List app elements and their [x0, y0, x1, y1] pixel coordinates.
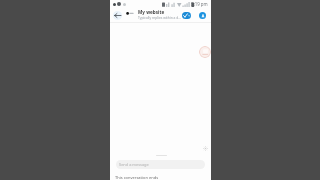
- button[interactable]: Verified business: [182, 12, 191, 19]
- button[interactable]: Business profile photo: [126, 11, 136, 19]
- button[interactable]: Back: [113, 11, 122, 20]
- button[interactable]: Profile: [199, 12, 206, 19]
- staticText: 5:19 pm: [191, 1, 208, 7]
- staticText: Send a message: [119, 162, 149, 167]
- staticText: This conversation ends: [115, 175, 159, 180]
- button[interactable]: Send a message: [116, 160, 205, 169]
- staticText: Typically replies within a day: [138, 15, 181, 19]
- staticText: My website: [138, 9, 165, 15]
